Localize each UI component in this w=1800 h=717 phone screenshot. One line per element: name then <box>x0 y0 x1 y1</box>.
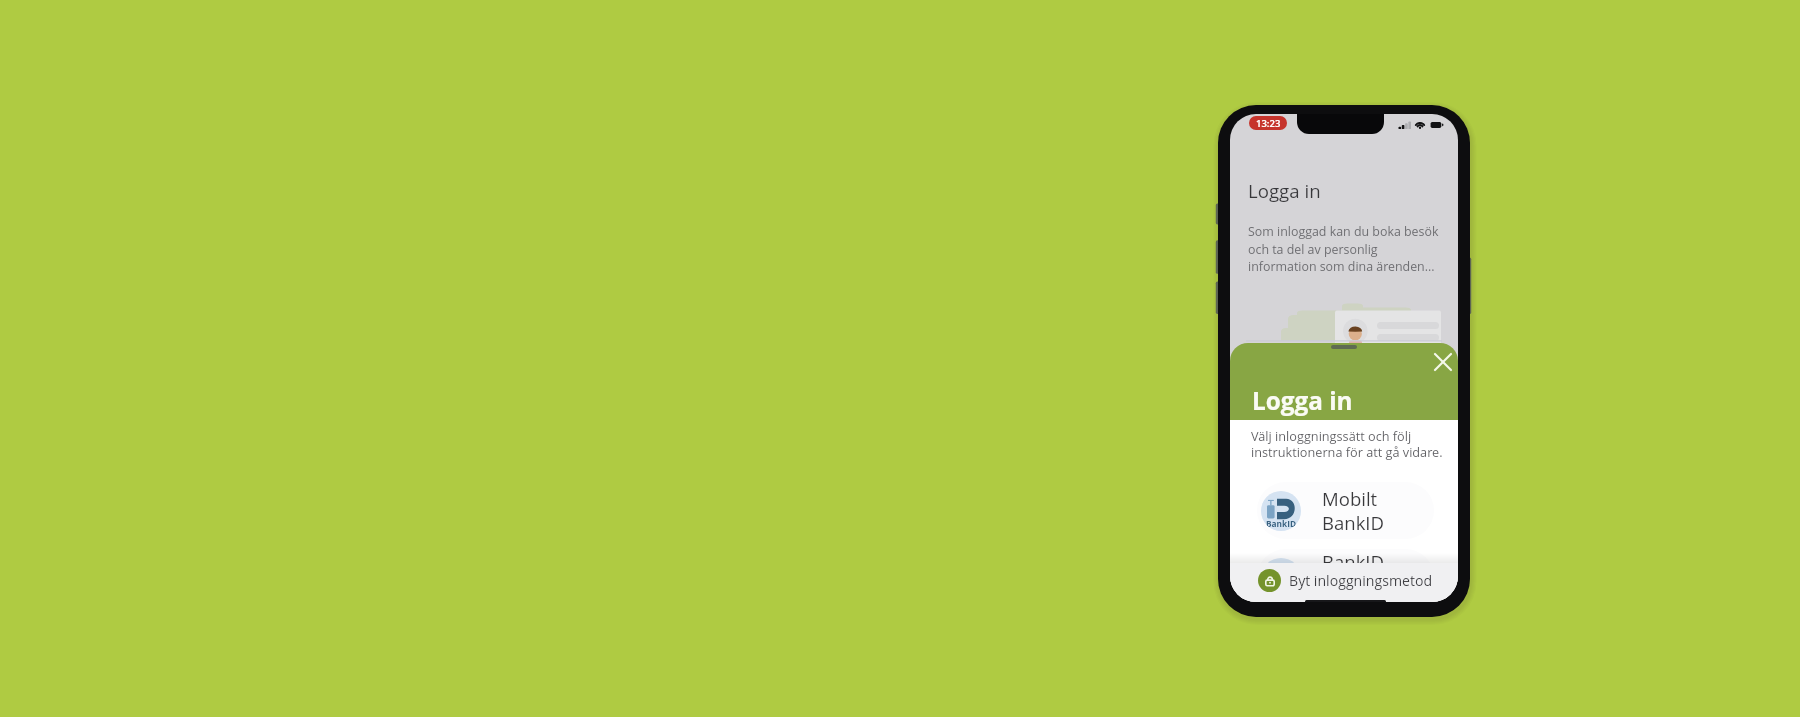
button[interactable]: Stäng <box>1429 348 1457 376</box>
staticText: Byt inloggningsmetod <box>1289 571 1433 590</box>
staticText: BankID på annan enhet <box>1322 549 1434 602</box>
staticText: Välj inloggningssätt och följ instruktio… <box>1251 427 1449 461</box>
staticText: 13:23 <box>1256 117 1281 130</box>
staticText: Logga in <box>1252 384 1353 417</box>
staticText: BankID <box>1266 518 1297 529</box>
staticText: Mobilt BankID <box>1322 486 1384 535</box>
button[interactable]: BankID <box>1257 549 1434 602</box>
button[interactable]: BankID <box>1257 482 1434 539</box>
staticText: BankID <box>1266 585 1297 596</box>
button[interactable]: Byt inloggningsmetod <box>1230 563 1458 602</box>
staticText: Som inloggad kan du boka besök och ta de… <box>1248 223 1444 274</box>
staticText: Logga in <box>1248 178 1321 203</box>
